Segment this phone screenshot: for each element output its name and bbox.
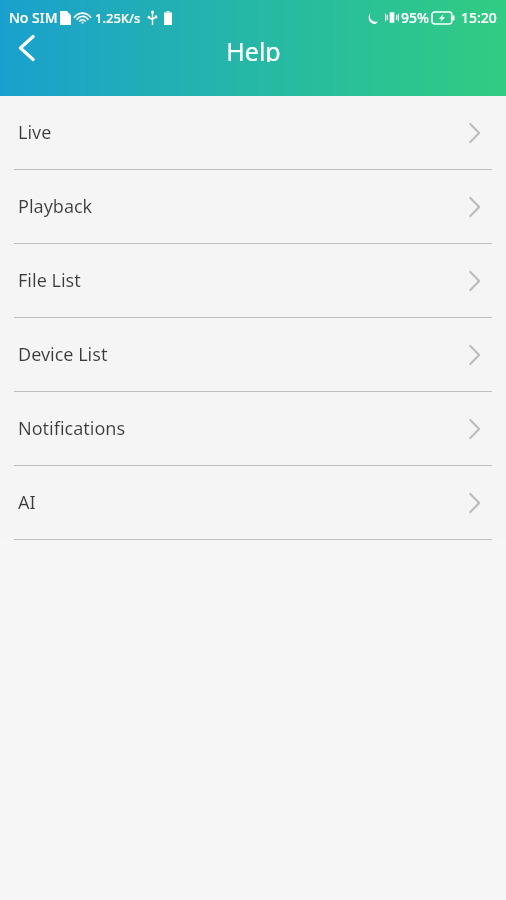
button[interactable]: Notifications — [0, 392, 506, 465]
button[interactable]: Playback — [0, 170, 506, 243]
staticText: Playback — [18, 194, 93, 219]
staticText: AI — [18, 490, 36, 515]
button[interactable]: Back — [0, 34, 54, 62]
staticText: Device List — [18, 342, 108, 367]
staticText: File List — [18, 268, 81, 293]
button[interactable]: AI — [0, 466, 506, 539]
staticText: 95% — [401, 8, 429, 27]
staticText: No SIM — [9, 8, 58, 27]
staticText: Help — [226, 34, 281, 62]
staticText: 1.25K/s — [95, 9, 141, 27]
button[interactable]: Live — [0, 96, 506, 169]
staticText: Live — [18, 120, 52, 145]
button[interactable]: File List — [0, 244, 506, 317]
staticText: Notifications — [18, 416, 126, 441]
button[interactable]: Device List — [0, 318, 506, 391]
staticText: 15:20 — [461, 8, 497, 27]
